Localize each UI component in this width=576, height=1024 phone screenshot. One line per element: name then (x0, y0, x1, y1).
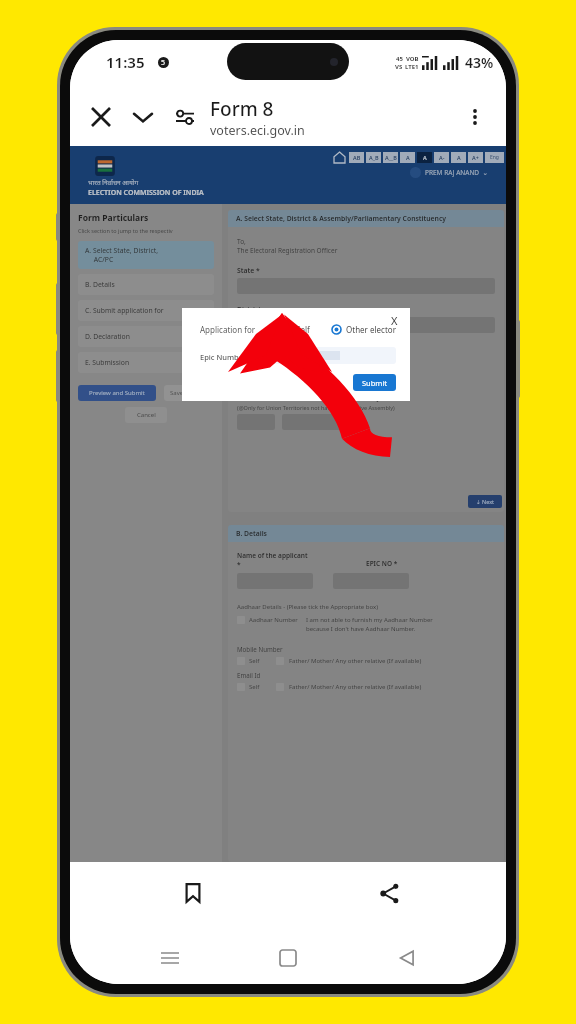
staticText: भारत निर्वाचन आयोग (88, 178, 139, 187)
button[interactable]: A__B (383, 152, 398, 163)
button[interactable]: B. Details (78, 274, 214, 295)
staticText: Click section to jump to the respectiv (78, 227, 173, 234)
staticText: No. & Name of Parliamentary Constituency… (250, 393, 389, 401)
staticText: VS (395, 63, 403, 71)
staticText: EPIC NO * (366, 559, 398, 568)
staticText: The Electoral Registration Officer (237, 246, 338, 255)
staticText: X (391, 313, 398, 328)
staticText: 45 (396, 55, 403, 63)
staticText: Aadhaar Details - (Please tick the Appro… (237, 603, 378, 611)
staticText: * (237, 560, 241, 569)
staticText: Epic Number * (200, 352, 253, 362)
staticText: (@Only for Union Territories not having … (237, 404, 395, 411)
button[interactable]: Eng (485, 152, 504, 163)
staticText: A+ (472, 154, 479, 161)
staticText: LTE1 (405, 63, 419, 71)
button[interactable]: Close (86, 102, 116, 132)
button[interactable] (282, 360, 362, 376)
staticText: 5 (161, 58, 166, 68)
staticText: To, (237, 237, 246, 246)
button[interactable]: A+ (468, 152, 483, 163)
staticText: Eng (490, 154, 499, 161)
staticText: A (423, 154, 427, 161)
button[interactable]: Preview and Submit (78, 385, 156, 401)
button[interactable]: A_B (366, 152, 381, 163)
staticText: A. Select State, District, AC/PC (85, 246, 158, 264)
button[interactable]: Submit (353, 374, 396, 391)
button[interactable] (282, 414, 362, 430)
staticText: VOB (406, 55, 419, 63)
button[interactable]: Close dialog (386, 312, 402, 328)
staticText: C. Submit application for (85, 306, 164, 315)
button[interactable]: Cancel (125, 407, 167, 423)
button[interactable]: Home (269, 939, 307, 977)
staticText: A- (439, 154, 445, 161)
button[interactable]: Back (388, 939, 426, 977)
staticText: Form 8 (210, 96, 274, 122)
staticText: Email Id (237, 671, 261, 679)
staticText: D. Declaration (85, 332, 130, 341)
button[interactable]: D. Declaration (78, 326, 214, 347)
staticText: B. Details (236, 529, 267, 538)
button[interactable]: AB (349, 152, 364, 163)
button[interactable]: No. & Name of Parliamentary Constituency… (237, 393, 389, 401)
button[interactable]: A (451, 152, 466, 163)
staticText: Or (362, 381, 370, 389)
staticText: PREM RAJ ANAND ⌄ (425, 168, 488, 177)
staticText: Submit (362, 378, 388, 388)
button[interactable]: C. Submit application for (78, 300, 214, 321)
staticText: A (457, 154, 461, 161)
staticText: 43% (465, 53, 494, 72)
staticText: Application for (200, 324, 256, 335)
button[interactable]: Bookmark (176, 876, 210, 910)
button[interactable]: More options (460, 102, 490, 132)
staticText: Self (249, 683, 260, 691)
staticText: A_B (369, 154, 379, 161)
button[interactable]: Share (372, 876, 406, 910)
button[interactable]: Self (282, 324, 310, 335)
staticText: Aadhaar Number (249, 616, 298, 624)
button[interactable]: Recent apps (151, 939, 189, 977)
button[interactable]: No. & Name of Assembly Constituency* (237, 347, 370, 355)
staticText: Self (296, 324, 310, 335)
button[interactable]: Save (164, 385, 190, 401)
button[interactable]: A- (434, 152, 449, 163)
staticText: 11:35 (106, 52, 145, 72)
button[interactable]: Downloads (128, 102, 158, 132)
staticText: A__B (385, 154, 397, 161)
button[interactable]: A. Select State, District, AC/PC (78, 241, 214, 269)
button[interactable]: Other elector (332, 324, 396, 335)
staticText: E. Submission (85, 358, 130, 367)
staticText: Form Particulars (78, 212, 149, 224)
staticText: No. & Name of Assembly Constituency* (250, 347, 370, 355)
button[interactable]: Page settings (170, 102, 200, 132)
staticText: ELECTION COMMISSION OF INDIA (88, 188, 204, 198)
staticText: A. Select State, District & Assembly/Par… (236, 214, 447, 223)
staticText: Cancel (137, 411, 156, 419)
button[interactable]: ⇣ Next (468, 495, 502, 508)
staticText: I am not able to furnish my Aadhaar Numb… (306, 616, 456, 633)
staticText: Father/ Mother/ Any other relative (If a… (289, 683, 422, 691)
button[interactable]: XMX. (270, 347, 396, 364)
button[interactable]: E. Submission (78, 352, 214, 373)
button[interactable]: A (400, 152, 415, 163)
staticText: Other elector (346, 324, 396, 335)
staticText: ⇣ Next (476, 498, 495, 505)
staticText: Preview and Submit (89, 389, 145, 397)
staticText: Name of the applicant (237, 551, 308, 560)
button[interactable]: Home (333, 151, 346, 164)
button[interactable]: A (417, 152, 432, 163)
button[interactable] (237, 360, 275, 376)
button[interactable] (237, 317, 495, 333)
staticText: Mobile Number (237, 645, 283, 653)
